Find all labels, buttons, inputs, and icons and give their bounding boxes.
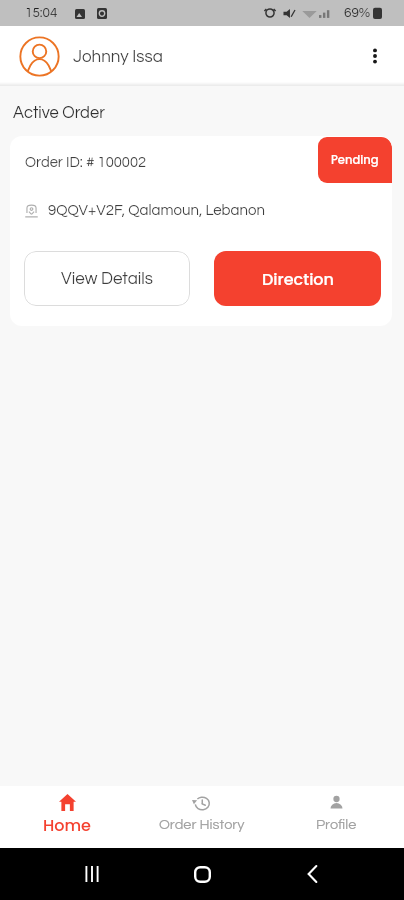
- button[interactable]: Order History: [134, 786, 269, 848]
- button[interactable]: Home: [184, 856, 220, 892]
- staticText: 69%: [344, 6, 371, 20]
- button[interactable]: Recent apps: [74, 856, 110, 892]
- staticText: Johnny Issa: [73, 48, 163, 66]
- button[interactable]: Profile: [269, 786, 404, 848]
- staticText: Active Order: [13, 104, 105, 121]
- button[interactable]: Direction: [214, 251, 381, 306]
- button[interactable]: Back: [294, 856, 330, 892]
- staticText: Direction: [262, 268, 334, 290]
- button[interactable]: More options: [355, 36, 395, 76]
- staticText: Order ID: # 100002: [25, 155, 147, 170]
- button[interactable]: View Details: [24, 251, 190, 306]
- staticText: Order History: [159, 817, 245, 832]
- staticText: View Details: [61, 270, 154, 288]
- staticText: 15:04: [25, 6, 58, 20]
- button[interactable]: Home: [0, 786, 134, 848]
- staticText: Profile: [316, 817, 357, 832]
- staticText: Home: [43, 814, 91, 836]
- staticText: Pending: [331, 152, 379, 168]
- staticText: 9QQV+V2F, Qalamoun, Lebanon: [48, 203, 265, 218]
- button[interactable]: Pending: [318, 137, 392, 183]
